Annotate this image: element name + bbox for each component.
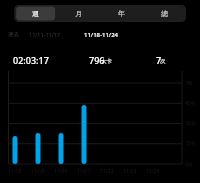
staticText: 11/18-11/24: [84, 31, 119, 39]
button[interactable]: [14, 5, 57, 22]
staticText: 11/11-11/17: [29, 31, 61, 38]
staticText: 796: [89, 54, 105, 66]
staticText: 15分: [185, 140, 196, 147]
staticText: 月: [75, 9, 82, 18]
staticText: 次: [160, 58, 166, 65]
staticText: 11/21: [77, 168, 91, 175]
staticText: 11/19: [31, 168, 45, 175]
button[interactable]: [100, 5, 143, 22]
staticText: 週: [32, 9, 39, 18]
staticText: 總: [161, 9, 168, 18]
staticText: 45分: [185, 100, 196, 107]
staticText: 11/18: [8, 168, 22, 175]
staticText: 11/24: [146, 168, 160, 175]
staticText: 0分: [185, 161, 193, 168]
staticText: 大卡: [101, 58, 112, 65]
staticText: 11/20: [54, 168, 68, 175]
button[interactable]: [57, 5, 100, 22]
staticText: 02:03:17: [13, 54, 49, 66]
staticText: 11/22: [100, 168, 114, 175]
button[interactable]: [143, 5, 186, 22]
staticText: 7: [156, 54, 162, 66]
staticText: 過去: [8, 31, 19, 38]
staticText: 1時: [185, 80, 193, 87]
staticText: 年: [118, 9, 125, 18]
staticText: 30分: [185, 120, 196, 127]
staticText: 11/23: [123, 168, 137, 175]
